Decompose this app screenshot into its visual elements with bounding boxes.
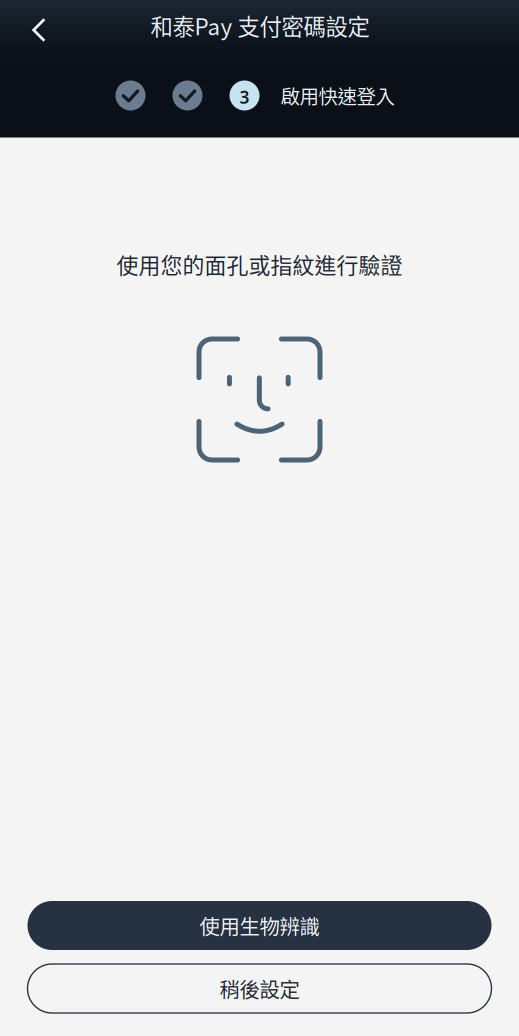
staticText: 和泰Pay 支付密碼設定	[150, 9, 369, 42]
staticText: 啟用快速登入	[280, 81, 394, 110]
button[interactable]: 返回	[13, 4, 65, 56]
staticText: 使用您的面孔或指紋進行驗證	[116, 248, 402, 280]
staticText: 稍後設定	[219, 974, 299, 1003]
button[interactable]: 使用生物辨識	[27, 901, 491, 950]
button[interactable]: 稍後設定	[27, 964, 491, 1013]
staticText: 使用生物辨識	[199, 911, 319, 940]
staticText: 3	[239, 85, 249, 108]
